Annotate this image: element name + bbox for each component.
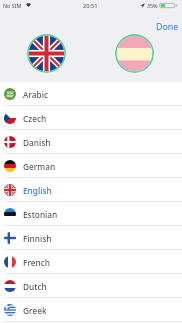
button[interactable]: English (0, 178, 182, 202)
staticText: Arabic (23, 89, 48, 100)
staticText: Greek (23, 305, 47, 316)
button[interactable]: French (0, 250, 182, 274)
staticText: 35% (147, 2, 158, 9)
button[interactable]: Done (154, 19, 181, 35)
staticText: Estonian (23, 209, 58, 220)
staticText: French (23, 257, 50, 268)
button[interactable]: Dutch (0, 274, 182, 298)
button[interactable]: Estonian (0, 202, 182, 226)
button[interactable]: Finnish (0, 226, 182, 250)
staticText: English (23, 185, 52, 196)
staticText: Czech (23, 113, 47, 124)
staticText: 20:51 (83, 2, 98, 10)
button[interactable]: Greek (0, 298, 182, 322)
button[interactable]: Spanish flag (115, 34, 154, 73)
button[interactable]: German (0, 154, 182, 178)
button[interactable]: Danish (0, 130, 182, 154)
staticText: Done (156, 21, 179, 33)
staticText: Dutch (23, 281, 47, 292)
staticText: Finnish (23, 233, 52, 244)
staticText: German (23, 161, 56, 172)
button[interactable]: English flag selected (27, 34, 66, 73)
staticText: No SIM (3, 2, 22, 9)
staticText: Danish (23, 137, 51, 148)
button[interactable]: Czech (0, 106, 182, 130)
button[interactable]: Arabic (0, 82, 182, 106)
